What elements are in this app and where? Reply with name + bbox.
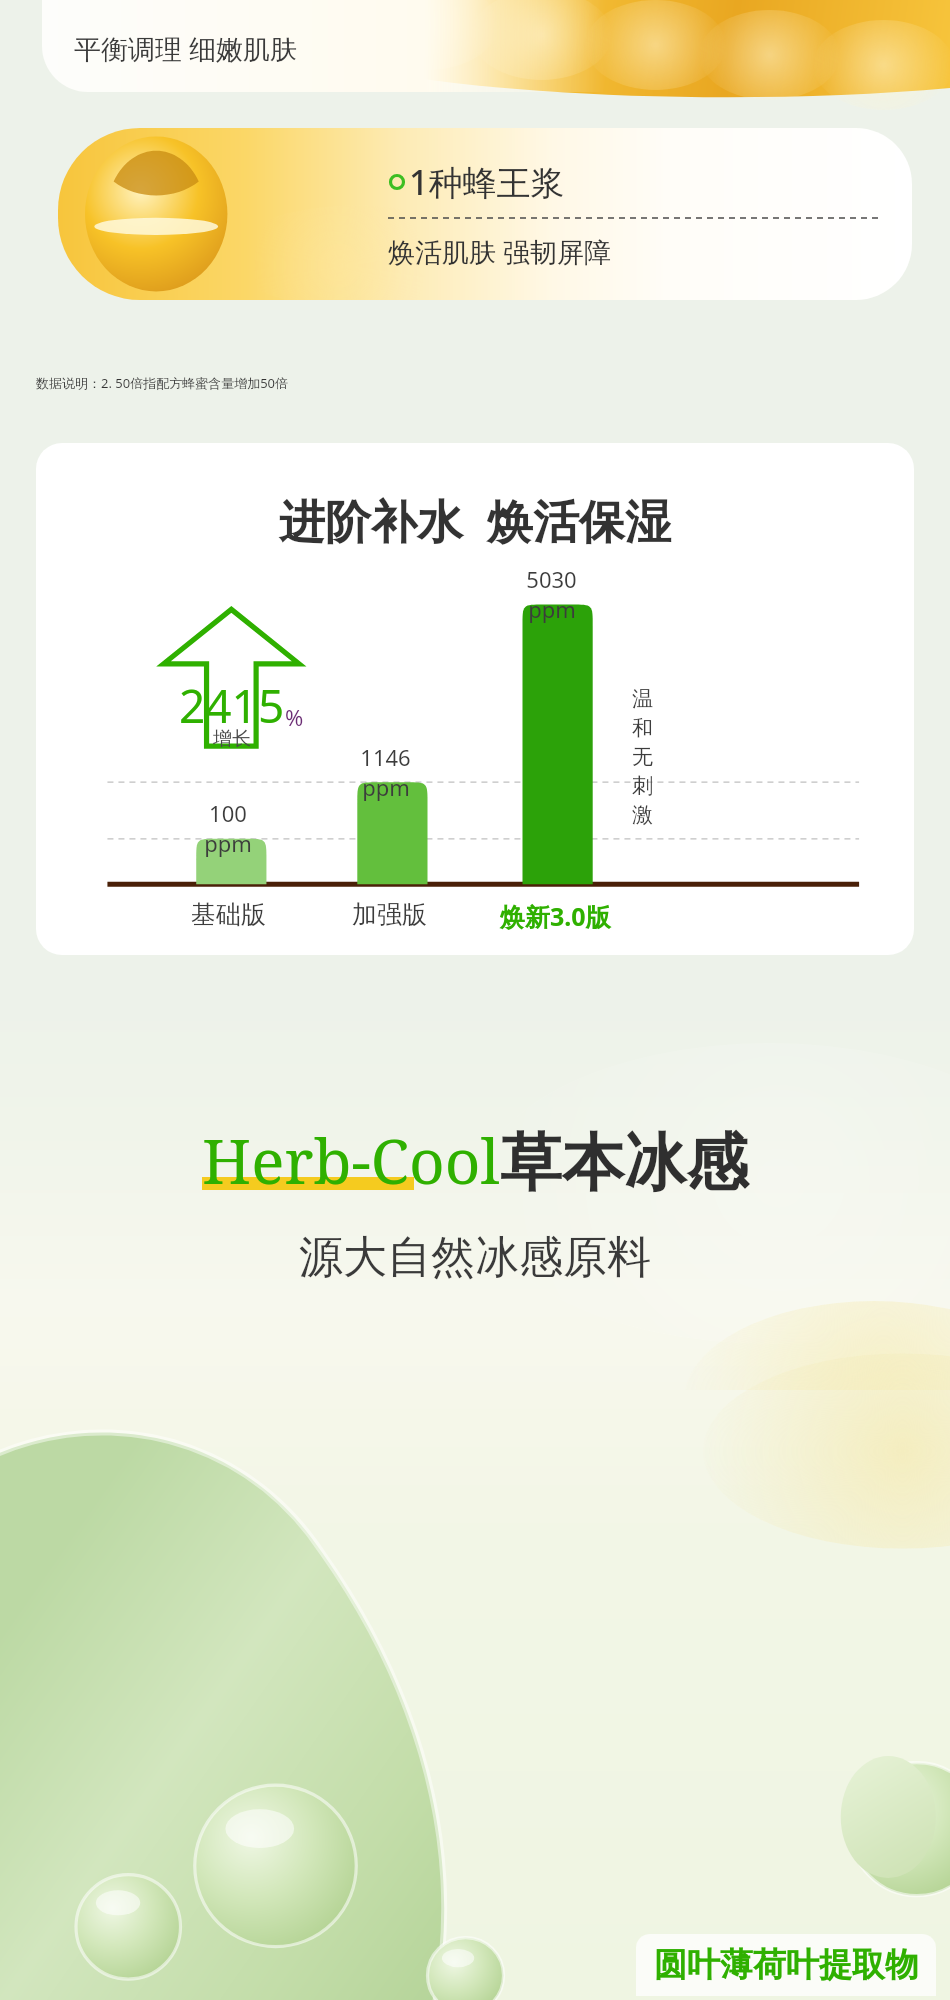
staticText: Herb-Cool [202, 1118, 500, 1202]
staticText: 2415 [179, 674, 285, 737]
staticText: 100 [209, 798, 247, 828]
staticText: 刺 [632, 773, 653, 799]
staticText: 1146 [360, 742, 411, 772]
staticText: 激 [632, 802, 653, 828]
staticText: 无 [632, 744, 653, 770]
staticText: 加强版 [352, 899, 427, 930]
staticText: 草本冰感 [500, 1124, 748, 1202]
button[interactable]: 1种蜂王浆 [58, 128, 912, 300]
staticText: 基础版 [191, 899, 266, 930]
staticText: 焕活肌肤 强韧屏障 [388, 233, 612, 270]
staticText: 数据说明：2. 50倍指配方蜂蜜含量增加50倍 [36, 374, 289, 392]
staticText: 增长 [213, 727, 251, 751]
staticText: ppm [204, 828, 252, 858]
staticText: 1种蜂王浆 [409, 159, 565, 205]
staticText: 平衡调理 细嫩肌肤 [74, 30, 298, 67]
staticText: ppm [362, 772, 410, 802]
staticText: 进阶补水 焕活保湿 [279, 489, 671, 552]
staticText: % [285, 702, 304, 732]
button[interactable]: 圆叶薄荷叶提取物 [654, 1944, 918, 1986]
staticText: 温 [632, 686, 653, 712]
staticText: 5030 [526, 564, 577, 594]
staticText: 和 [632, 715, 653, 741]
staticText: 焕新3.0版 [500, 899, 611, 933]
staticText: 圆叶薄荷叶提取物 [654, 1944, 918, 1986]
staticText: ppm [528, 594, 576, 624]
staticText: 源大自然冰感原料 [299, 1230, 651, 1285]
button[interactable]: 进阶补水 焕活保湿 [36, 443, 914, 955]
